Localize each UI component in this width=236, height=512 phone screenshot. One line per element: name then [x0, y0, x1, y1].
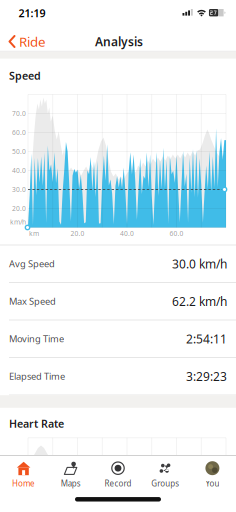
staticText: Max Speed: [9, 295, 56, 307]
staticText: Ride: [19, 33, 46, 50]
button[interactable]: Groups: [142, 455, 189, 495]
staticText: Heart Rate: [9, 416, 64, 431]
staticText: 21:19: [18, 6, 45, 20]
staticText: 30.0: [12, 185, 26, 194]
staticText: 50.0: [12, 147, 26, 156]
staticText: 20.0: [12, 204, 26, 213]
staticText: Record: [104, 478, 131, 489]
staticText: Home: [12, 478, 35, 489]
staticText: km: [29, 229, 39, 238]
staticText: Groups: [151, 478, 179, 489]
staticText: 3:29:23: [186, 368, 227, 384]
staticText: 2:54:11: [186, 331, 227, 347]
staticText: km/h: [10, 218, 26, 226]
staticText: 60.0: [12, 128, 26, 137]
staticText: 20.0: [70, 229, 84, 238]
button[interactable]: Record: [94, 455, 142, 495]
button[interactable]: Maps: [47, 455, 94, 495]
button[interactable]: Home: [0, 455, 47, 495]
staticText: 60.0: [169, 229, 183, 238]
staticText: 62.2 km/h: [172, 293, 227, 309]
staticText: 40.0: [120, 229, 134, 238]
button[interactable]: You: [189, 455, 236, 495]
staticText: 70.0: [12, 109, 26, 118]
staticText: Speed: [9, 68, 41, 83]
staticText: Avg Speed: [9, 258, 55, 270]
staticText: 40.0: [12, 166, 26, 175]
staticText: Elapsed Time: [9, 370, 65, 382]
button[interactable]: Back: [8, 30, 60, 52]
button[interactable]: Home: [75, 497, 161, 502]
staticText: You: [205, 478, 219, 489]
staticText: Analysis: [95, 33, 143, 49]
staticText: Maps: [61, 478, 81, 489]
staticText: 30.0 km/h: [172, 256, 227, 272]
staticText: Moving Time: [9, 333, 64, 345]
